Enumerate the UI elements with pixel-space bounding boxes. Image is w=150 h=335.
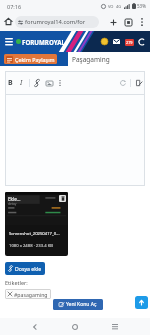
button[interactable]: Tabs (121, 15, 135, 29)
button[interactable]: Dark mode (137, 37, 147, 47)
staticText: I (20, 78, 23, 87)
staticText: forumroyal14.com/for (25, 18, 86, 26)
button[interactable]: B (6, 78, 15, 87)
button[interactable]: Menu (2, 35, 15, 48)
button[interactable]: I (17, 78, 26, 87)
staticText: 53% (137, 3, 146, 9)
button[interactable]: New tab (106, 15, 120, 29)
button[interactable]: Recent apps (106, 318, 124, 335)
button[interactable]: Çekim Paylaşım (4, 54, 57, 64)
staticText: #pasagaming (14, 291, 48, 298)
button[interactable]: Messages (112, 37, 121, 46)
button[interactable]: Scroll to top (135, 296, 148, 309)
staticText: 1080 x 2488 · 233.4 KB (9, 243, 53, 249)
staticText: B (8, 78, 13, 87)
staticText: Screenshot_20250417_0... (9, 231, 60, 237)
button[interactable]: forumroyal14.com/for (15, 16, 99, 28)
staticText: 07:16 (7, 3, 22, 10)
button[interactable]: Home (66, 318, 84, 335)
staticText: 279 (126, 40, 133, 45)
button[interactable] (5, 95, 145, 186)
button[interactable]: #pasagaming (5, 289, 51, 299)
button[interactable]: Ekle... (5, 192, 68, 256)
button[interactable]: Dosya ekle (5, 262, 45, 275)
button[interactable]: More formatting (56, 79, 64, 87)
button[interactable]: Home (3, 16, 14, 27)
button[interactable]: Drafts (134, 78, 144, 88)
button[interactable]: More options (136, 16, 148, 28)
button[interactable]: Delete attachment (59, 195, 66, 202)
staticText: Paşagaming (72, 55, 110, 64)
staticText: Çekim Paylaşım (15, 56, 55, 63)
staticText: 4G (116, 4, 122, 9)
staticText: VO (108, 4, 114, 9)
staticText: Dosya ekle (15, 265, 42, 272)
staticText: FORUMROYAL (22, 38, 65, 46)
staticText: detay (8, 202, 17, 206)
staticText: Ekle... (8, 196, 21, 202)
button[interactable]: Back (26, 318, 44, 335)
button[interactable]: Yeni Konu Aç (53, 299, 103, 310)
button[interactable]: Insert image (44, 78, 54, 88)
button[interactable]: Insert link (32, 78, 42, 88)
button[interactable]: Notifications (124, 37, 134, 47)
button[interactable]: Undo (118, 78, 128, 88)
staticText: Yeni Konu Aç (66, 301, 97, 308)
staticText: Etiketler: (5, 279, 28, 286)
